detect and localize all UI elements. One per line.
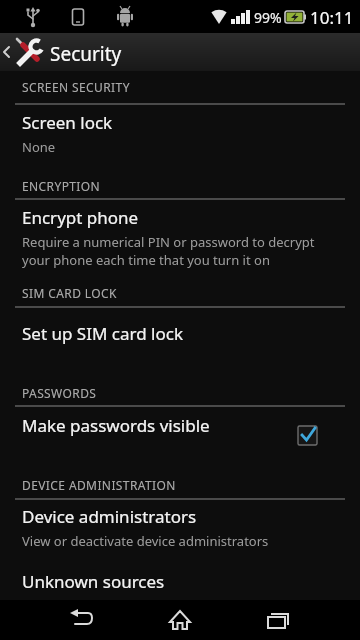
staticText: your phone each time that you turn it on <box>22 251 270 269</box>
staticText: PASSWORDS <box>22 385 97 401</box>
staticText: Security <box>50 41 122 67</box>
staticText: 99% <box>254 8 282 27</box>
button[interactable]: Set up SIM card lock <box>0 318 360 360</box>
staticText: Unknown sources <box>22 570 165 593</box>
staticText: Make passwords visible <box>22 414 210 437</box>
button[interactable] <box>58 600 106 640</box>
button[interactable] <box>254 600 302 640</box>
staticText: Device administrators <box>22 505 197 528</box>
button[interactable]: Unknown sources <box>0 566 360 600</box>
button[interactable]: Security <box>0 33 360 71</box>
staticText: View or deactivate device administrators <box>22 532 269 550</box>
staticText: Encrypt phone <box>22 206 139 229</box>
button[interactable]: Device administrators <box>0 501 360 559</box>
staticText: Screen lock <box>22 111 113 134</box>
staticText: Require a numerical PIN or password to d… <box>22 233 315 251</box>
staticText: None <box>22 138 56 156</box>
button[interactable]: Encrypt phone <box>0 202 360 274</box>
staticText: 10:11 <box>310 6 354 29</box>
staticText: DEVICE ADMINISTRATION <box>22 477 176 493</box>
button[interactable]: Make passwords visible <box>0 410 360 456</box>
button[interactable]: Screen lock <box>0 107 360 163</box>
staticText: Set up SIM card lock <box>22 322 183 345</box>
button[interactable] <box>156 600 204 640</box>
staticText: SCREEN SECURITY <box>22 79 130 95</box>
staticText: SIM CARD LOCK <box>22 285 117 301</box>
staticText: ENCRYPTION <box>22 178 101 194</box>
